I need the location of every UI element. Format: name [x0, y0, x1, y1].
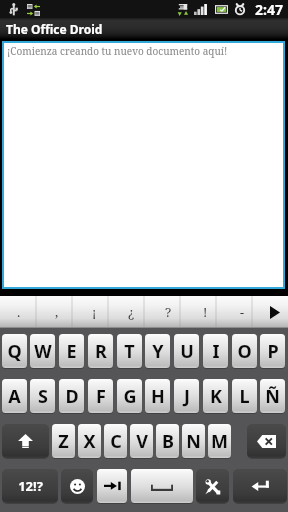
staticText: H [151, 384, 165, 409]
button[interactable]: Enter [233, 469, 287, 503]
staticText: S [38, 384, 48, 409]
button[interactable]: Space [131, 469, 193, 503]
button[interactable]: C [104, 424, 127, 458]
button[interactable]: Q [2, 334, 27, 368]
button[interactable]: U [174, 334, 199, 368]
button[interactable]: K [203, 379, 228, 413]
staticText: N [186, 429, 201, 454]
staticText: Z [58, 429, 69, 454]
staticText: L [239, 384, 250, 409]
button[interactable]: ? [150, 296, 187, 328]
staticText: U [180, 339, 194, 364]
staticText: 12!? [18, 477, 43, 495]
button[interactable]: F [88, 379, 113, 413]
staticText: R [95, 339, 107, 364]
staticText: E [66, 339, 77, 364]
staticText: C [110, 429, 122, 454]
button[interactable]: Y [145, 334, 170, 368]
staticText: The Office Droid [6, 21, 103, 37]
staticText: B [162, 429, 174, 454]
button[interactable]: V [130, 424, 153, 458]
button[interactable]: D [59, 379, 84, 413]
button[interactable]: Ñ [260, 379, 285, 413]
staticText: X [83, 429, 96, 454]
button[interactable]: H [145, 379, 170, 413]
other: Enter [251, 479, 270, 493]
staticText: O [237, 339, 252, 364]
other: Settings [204, 478, 221, 495]
button[interactable]: X [78, 424, 101, 458]
button[interactable]: 12!? [2, 469, 58, 503]
button[interactable]: Settings [196, 469, 229, 503]
button[interactable]: P [260, 334, 285, 368]
staticText: , [55, 303, 59, 321]
button[interactable]: I [203, 334, 228, 368]
button[interactable]: L [232, 379, 257, 413]
button[interactable]: G [117, 379, 142, 413]
staticText: ? [165, 303, 172, 321]
button[interactable]: A [2, 379, 27, 413]
staticText: T [124, 339, 135, 364]
button[interactable]: , [38, 296, 76, 328]
staticText: K [210, 384, 222, 409]
staticText: ! [203, 303, 208, 321]
staticText: M [211, 429, 228, 454]
button[interactable]: More suggestions [261, 296, 288, 328]
button[interactable]: Shift [2, 424, 49, 458]
button[interactable]: M [208, 424, 231, 458]
staticText: W [34, 339, 52, 364]
staticText: 2:47 [255, 0, 283, 18]
button[interactable]: . [0, 296, 38, 328]
button[interactable]: T [117, 334, 142, 368]
other: Delete [257, 435, 276, 448]
button[interactable]: O [232, 334, 257, 368]
staticText: . [17, 303, 21, 321]
staticText: V [136, 429, 148, 454]
button[interactable]: ¡ [76, 296, 113, 328]
staticText: - [240, 303, 245, 321]
button[interactable]: Delete [247, 424, 286, 458]
staticText: G [123, 384, 137, 409]
staticText: D [65, 384, 79, 409]
button[interactable]: R [88, 334, 113, 368]
button[interactable]: ! [187, 296, 224, 328]
button[interactable]: J [174, 379, 199, 413]
other: Tab [104, 480, 121, 492]
button[interactable]: S [30, 379, 55, 413]
other: Emoji [70, 479, 85, 494]
button[interactable]: Z [52, 424, 75, 458]
staticText: F [96, 384, 106, 409]
staticText: Y [152, 339, 164, 364]
staticText: P [267, 339, 279, 364]
button[interactable]: Emoji [61, 469, 93, 503]
staticText: Ñ [265, 384, 280, 409]
button[interactable]: - [224, 296, 261, 328]
button[interactable]: N [182, 424, 205, 458]
button[interactable]: Tab [97, 469, 127, 503]
staticText: Q [7, 339, 22, 364]
staticText: A [8, 384, 21, 409]
other: Shift [18, 434, 33, 448]
button[interactable]: ¿ [113, 296, 150, 328]
staticText: I [212, 339, 220, 364]
other: Space [151, 482, 173, 491]
staticText: ¡Comienza creando tu nuevo documento aqu… [7, 44, 228, 58]
staticText: J [184, 384, 190, 409]
button[interactable]: E [59, 334, 84, 368]
button[interactable]: B [156, 424, 179, 458]
button[interactable]: W [30, 334, 55, 368]
staticText: ¡ [92, 303, 97, 321]
staticText: ¿ [128, 303, 135, 321]
